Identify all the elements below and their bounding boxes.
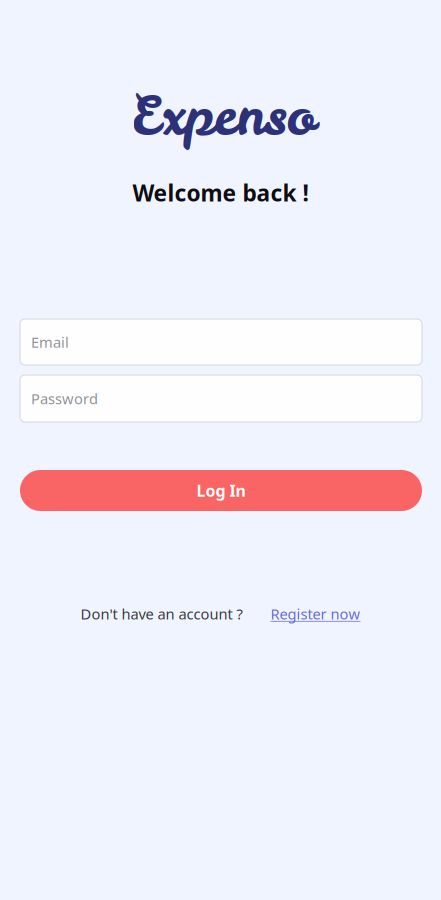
button[interactable]: Log In xyxy=(20,470,422,511)
staticText: Expenso xyxy=(131,80,315,152)
button[interactable]: Register now xyxy=(270,604,360,623)
button[interactable]: Password xyxy=(20,375,422,422)
staticText: Email xyxy=(31,332,69,352)
staticText: Welcome back ! xyxy=(132,178,308,208)
staticText: Log In xyxy=(196,480,245,501)
staticText: Password xyxy=(31,389,98,408)
staticText: Don't have an account ? xyxy=(80,604,242,623)
staticText: Register now xyxy=(270,604,360,623)
button[interactable]: Email xyxy=(20,319,422,365)
